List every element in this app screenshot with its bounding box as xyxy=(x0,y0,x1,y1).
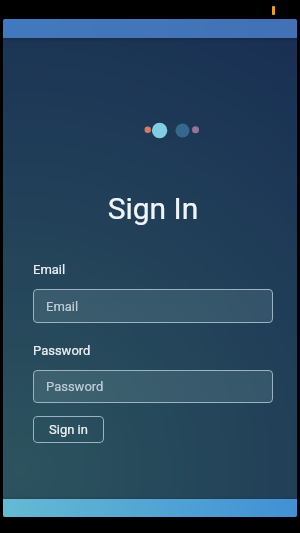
staticText: Email xyxy=(46,299,79,314)
button[interactable]: Bottom bar xyxy=(3,499,297,517)
staticText: Password xyxy=(46,379,104,394)
button[interactable]: Email xyxy=(33,289,273,323)
staticText: Password xyxy=(33,343,91,358)
staticText: Sign In xyxy=(6,191,297,226)
staticText: Email xyxy=(33,262,66,277)
button[interactable]: Password xyxy=(33,370,273,403)
staticText: Sign in xyxy=(49,422,88,437)
button[interactable]: App bar xyxy=(3,19,297,38)
button[interactable]: Sign in xyxy=(33,416,104,443)
